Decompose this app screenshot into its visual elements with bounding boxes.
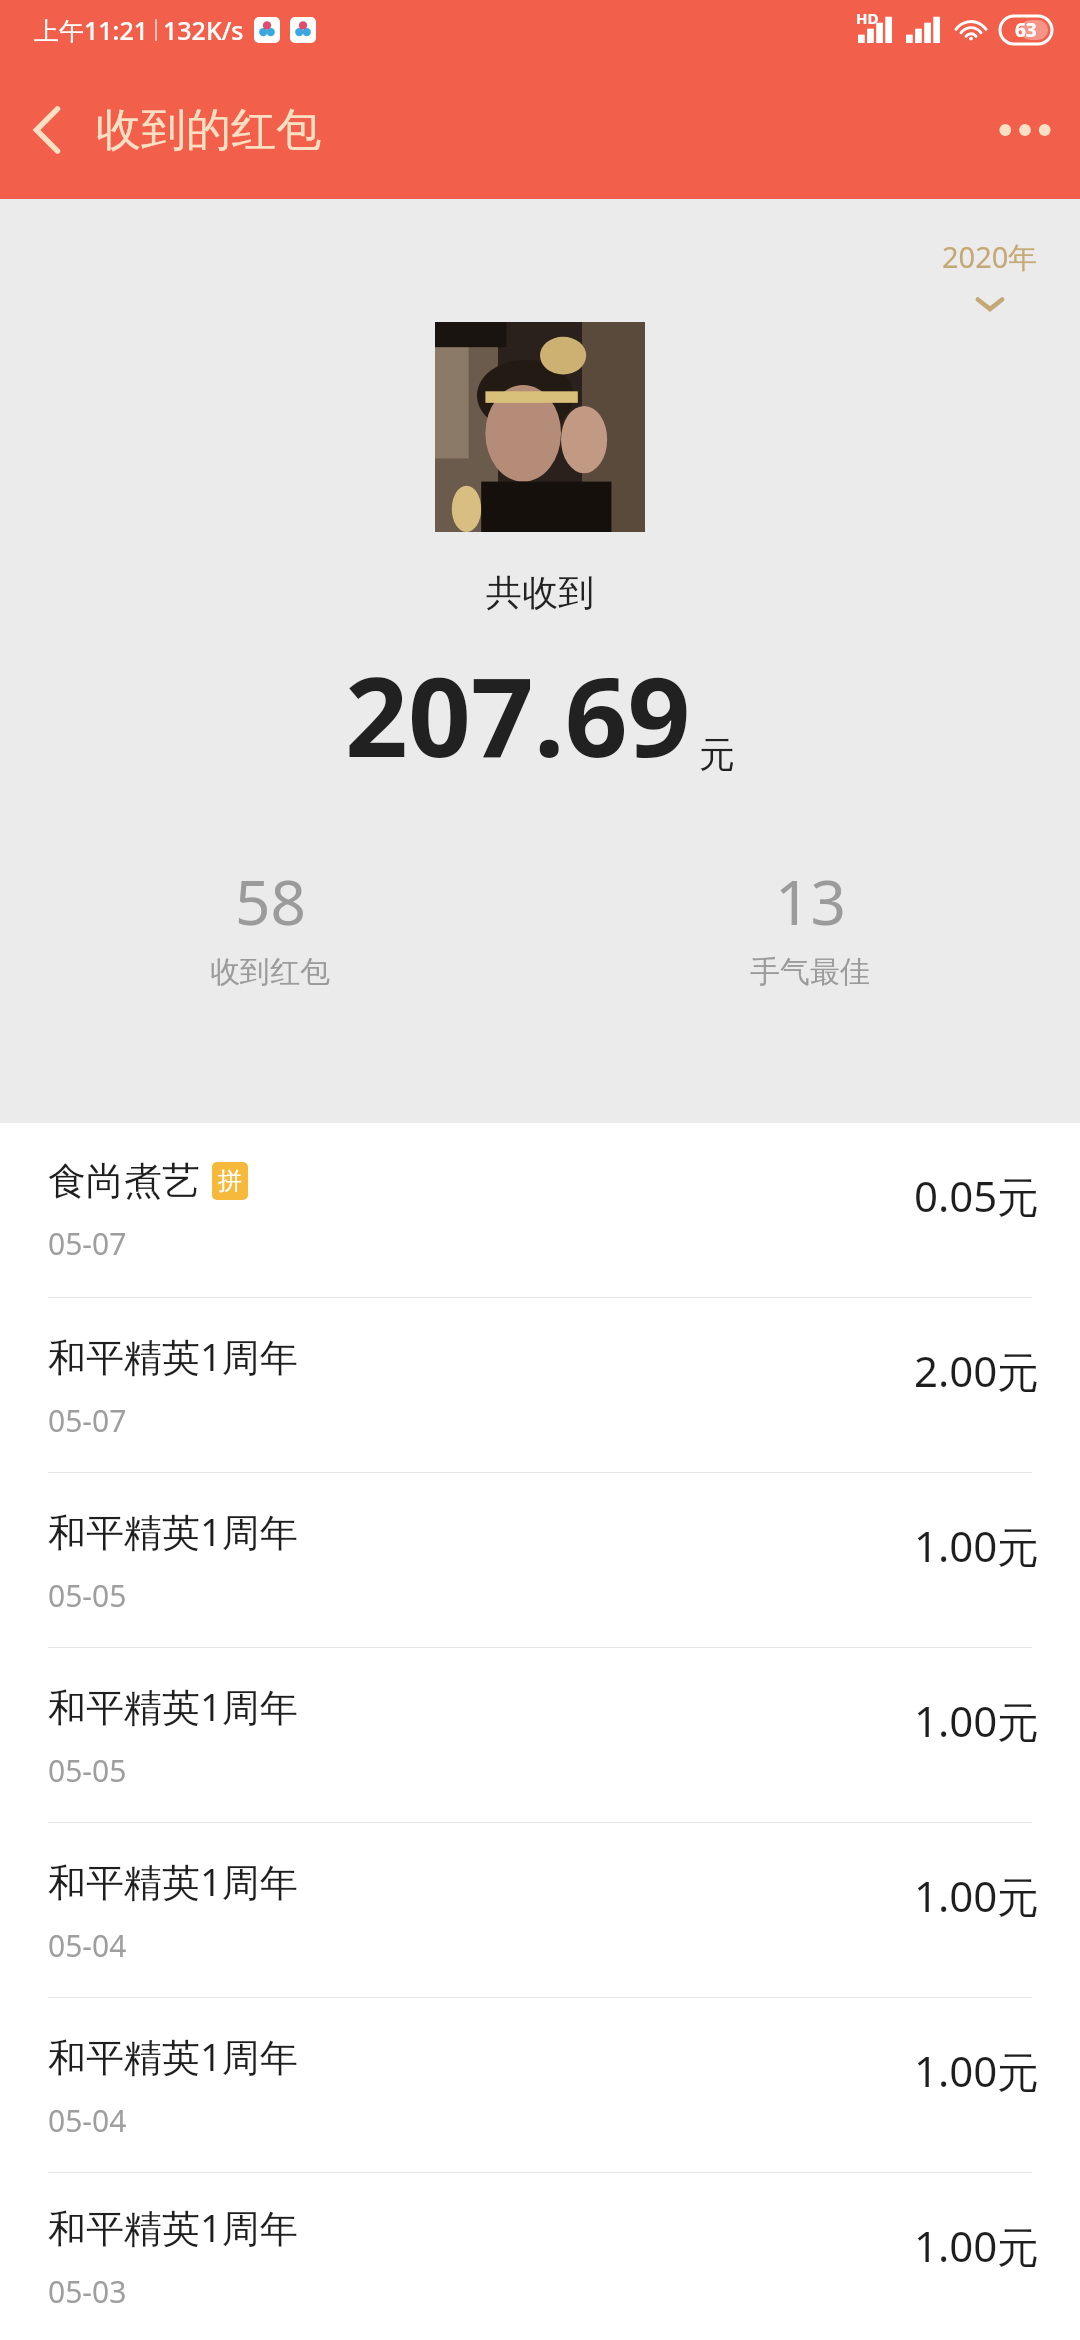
staticText: 1.00元 xyxy=(914,2042,1040,2099)
staticText: 元 xyxy=(699,732,735,777)
button[interactable]: 2020年 xyxy=(930,231,1050,319)
staticText: 1.00元 xyxy=(914,1692,1040,1749)
staticText: 和平精英1周年 xyxy=(48,2030,298,2082)
staticText: 1.00元 xyxy=(914,1867,1040,1924)
staticText: HD xyxy=(856,8,879,28)
staticText: 132K/s xyxy=(163,13,244,47)
staticText: 05-04 xyxy=(48,1925,127,1966)
staticText: 58 xyxy=(235,859,306,943)
staticText: 1.00元 xyxy=(914,2217,1040,2274)
button[interactable]: 和平精英1周年 xyxy=(0,1823,1080,1997)
staticText: 05-07 xyxy=(48,1223,127,1264)
staticText: 0.05元 xyxy=(914,1167,1040,1224)
staticText: 和平精英1周年 xyxy=(48,2201,298,2253)
staticText: 上午11:21 xyxy=(34,13,149,47)
button[interactable]: 58 xyxy=(0,859,540,991)
staticText: 2.00元 xyxy=(914,1342,1040,1399)
staticText: 05-04 xyxy=(48,2100,127,2141)
button[interactable]: Back xyxy=(0,82,96,178)
staticText: 拼 xyxy=(218,1166,242,1196)
staticText: 05-05 xyxy=(48,1750,127,1791)
button[interactable]: 和平精英1周年 xyxy=(0,1648,1080,1822)
staticText: 05-03 xyxy=(48,2271,127,2312)
button[interactable]: 和平精英1周年 xyxy=(0,2173,1080,2340)
button[interactable]: 和平精英1周年 xyxy=(0,1298,1080,1472)
staticText: 收到的红包 xyxy=(96,102,321,159)
staticText: 食尚煮艺 xyxy=(48,1157,200,1205)
button[interactable]: 和平精英1周年 xyxy=(0,1473,1080,1647)
staticText: 和平精英1周年 xyxy=(48,1330,298,1382)
staticText: 和平精英1周年 xyxy=(48,1680,298,1732)
staticText: 05-05 xyxy=(48,1575,127,1616)
staticText: 共收到 xyxy=(486,570,594,615)
button[interactable]: 13 xyxy=(540,859,1080,991)
staticText: 手气最佳 xyxy=(750,953,870,991)
staticText: 2020年 xyxy=(942,237,1038,277)
staticText: 和平精英1周年 xyxy=(48,1855,298,1907)
staticText: 13 xyxy=(775,859,846,943)
staticText: 和平精英1周年 xyxy=(48,1505,298,1557)
staticText: 05-07 xyxy=(48,1400,127,1441)
staticText: 63 xyxy=(1015,17,1037,43)
button[interactable]: More options xyxy=(970,75,1080,185)
button[interactable]: 和平精英1周年 xyxy=(0,1998,1080,2172)
staticText: 207.69 xyxy=(345,639,691,789)
staticText: 收到红包 xyxy=(210,953,330,991)
button[interactable]: 食尚煮艺 xyxy=(0,1123,1080,1297)
staticText: 1.00元 xyxy=(914,1517,1040,1574)
